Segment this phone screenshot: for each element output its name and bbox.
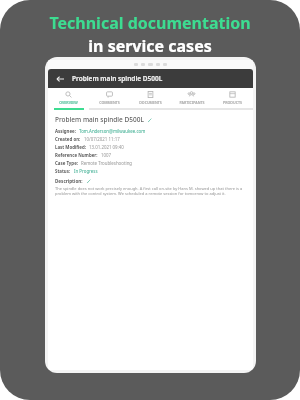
- button[interactable]: PARTICIPANTS: [171, 88, 212, 108]
- button[interactable]: DOCUMENTS: [130, 88, 171, 108]
- staticText: Remote Troubleshooting: [81, 160, 133, 166]
- staticText: PARTICIPANTS: [179, 100, 205, 105]
- staticText: Problem main spindle D500L: [55, 115, 144, 124]
- staticText: Created on:: [55, 136, 81, 142]
- button[interactable]: Edit description: [86, 178, 92, 184]
- staticText: In Progress: [74, 168, 98, 174]
- staticText: 10/07/2021 11:17: [84, 136, 120, 142]
- staticText: OVERVIEW: [59, 100, 78, 105]
- staticText: Reference Number:: [55, 152, 98, 158]
- staticText: 13.01.2021 09:40: [89, 144, 124, 150]
- staticText: Case Type:: [55, 160, 78, 166]
- staticText: 1007: [101, 152, 112, 158]
- button[interactable]: PRODUCTS: [212, 88, 253, 108]
- staticText: Problem main spindle D500L: [72, 74, 163, 83]
- staticText: Status:: [55, 168, 71, 174]
- button[interactable]: Edit title: [147, 117, 153, 123]
- staticText: DOCUMENTS: [139, 100, 162, 105]
- staticText: The spindle does not work precisely enou…: [55, 186, 246, 197]
- staticText: Description:: [55, 178, 83, 184]
- button[interactable]: Back: [54, 73, 66, 85]
- staticText: in service cases: [88, 35, 212, 57]
- staticText: Tom.Anderson@milwaukee.com: [79, 128, 146, 134]
- staticText: Technical documentation: [49, 12, 251, 34]
- staticText: COMMENTS: [99, 100, 120, 105]
- button[interactable]: OVERVIEW: [48, 88, 89, 108]
- staticText: PRODUCTS: [223, 100, 242, 105]
- staticText: Last Modified:: [55, 144, 86, 150]
- button[interactable]: COMMENTS: [89, 88, 130, 108]
- staticText: Assignee:: [55, 128, 76, 134]
